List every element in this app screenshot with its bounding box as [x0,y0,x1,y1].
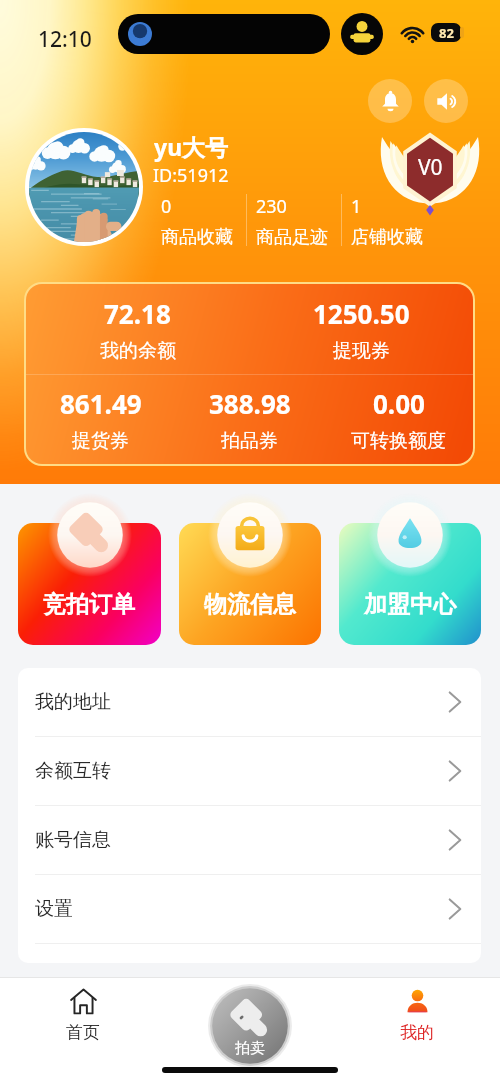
staticText: 账号信息 [35,828,448,852]
button[interactable]: 竞拍订单 [18,523,161,645]
button[interactable]: 我的 [400,988,434,1043]
staticText: 1 [351,194,362,219]
button[interactable]: 72.18 [26,284,473,464]
staticText: 我的 [400,1022,434,1043]
staticText: 861.49 [60,386,142,421]
staticText: 加盟中心 [364,590,456,619]
staticText: 首页 [66,1022,100,1043]
button[interactable]: Sound [424,79,468,123]
staticText: 物流信息 [204,590,296,619]
staticText: 店铺收藏 [351,226,423,249]
staticText: 可转换额度 [351,429,446,453]
staticText: 82 [439,24,454,42]
button[interactable]: 物流信息 [179,523,321,645]
button[interactable]: 72.18 [26,284,249,374]
button[interactable]: 余额互转 [18,737,481,806]
button[interactable]: 388.98 [175,375,324,464]
staticText: 我的地址 [35,690,448,714]
staticText: yu大号 [154,131,229,162]
staticText: 我的余额 [100,339,176,363]
button[interactable]: 0.00 [324,375,473,464]
staticText: 提货券 [72,429,129,453]
button[interactable]: Profile photo [29,132,139,242]
staticText: 1250.50 [313,296,410,331]
staticText: 设置 [35,897,448,921]
staticText: 0 [161,194,172,219]
staticText: 12:10 [38,25,92,54]
button[interactable]: 首页 [66,988,100,1043]
button[interactable]: 设置 [18,875,481,944]
button[interactable]: 我的地址 [18,668,481,737]
staticText: 商品足迹 [256,226,328,249]
staticText: 230 [256,194,287,219]
button[interactable]: 1250.50 [249,284,473,374]
staticText: 388.98 [209,386,291,421]
staticText: 拍品券 [221,429,278,453]
staticText: 0.00 [373,386,425,421]
staticText: 拍卖 [235,1039,265,1058]
button[interactable]: 加盟中心 [339,523,481,645]
button[interactable]: Notifications [368,79,412,123]
button[interactable]: 1 [351,194,436,249]
staticText: 提现券 [333,339,390,363]
staticText: 余额互转 [35,759,448,783]
staticText: 商品收藏 [161,226,233,249]
staticText: 竞拍订单 [43,590,135,619]
button[interactable]: Home indicator [162,1067,338,1073]
staticText: V0 [418,153,443,182]
button[interactable]: 账号信息 [18,806,481,875]
staticText: ID:51912 [153,163,229,188]
button[interactable]: 0 [161,194,246,249]
button[interactable]: 861.49 [26,375,175,464]
staticText: 72.18 [104,296,171,331]
button[interactable]: 230 [256,194,341,249]
